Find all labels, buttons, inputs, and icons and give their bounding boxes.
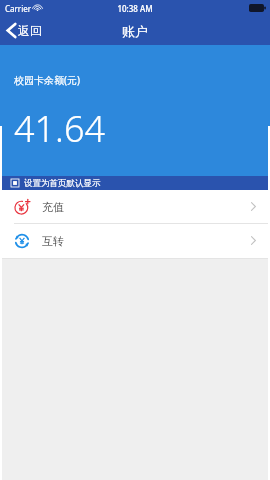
staticText: 41.64 — [14, 104, 106, 153]
staticText: 充值 — [42, 200, 64, 214]
button[interactable]: 互转 — [0, 224, 270, 257]
staticText: 返回 — [18, 23, 42, 38]
staticText: 互转 — [42, 234, 64, 248]
staticText: 账户 — [122, 23, 148, 39]
button[interactable]: 充值 — [0, 190, 270, 223]
button[interactable]: 返回 — [7, 16, 42, 45]
staticText: 校园卡余额(元) — [14, 73, 80, 87]
staticText: 设置为首页默认显示 — [24, 178, 101, 189]
staticText: Carrier — [5, 3, 32, 14]
staticText: 10:38 AM — [117, 3, 153, 14]
button[interactable]: 设置为首页默认显示 — [0, 176, 270, 190]
